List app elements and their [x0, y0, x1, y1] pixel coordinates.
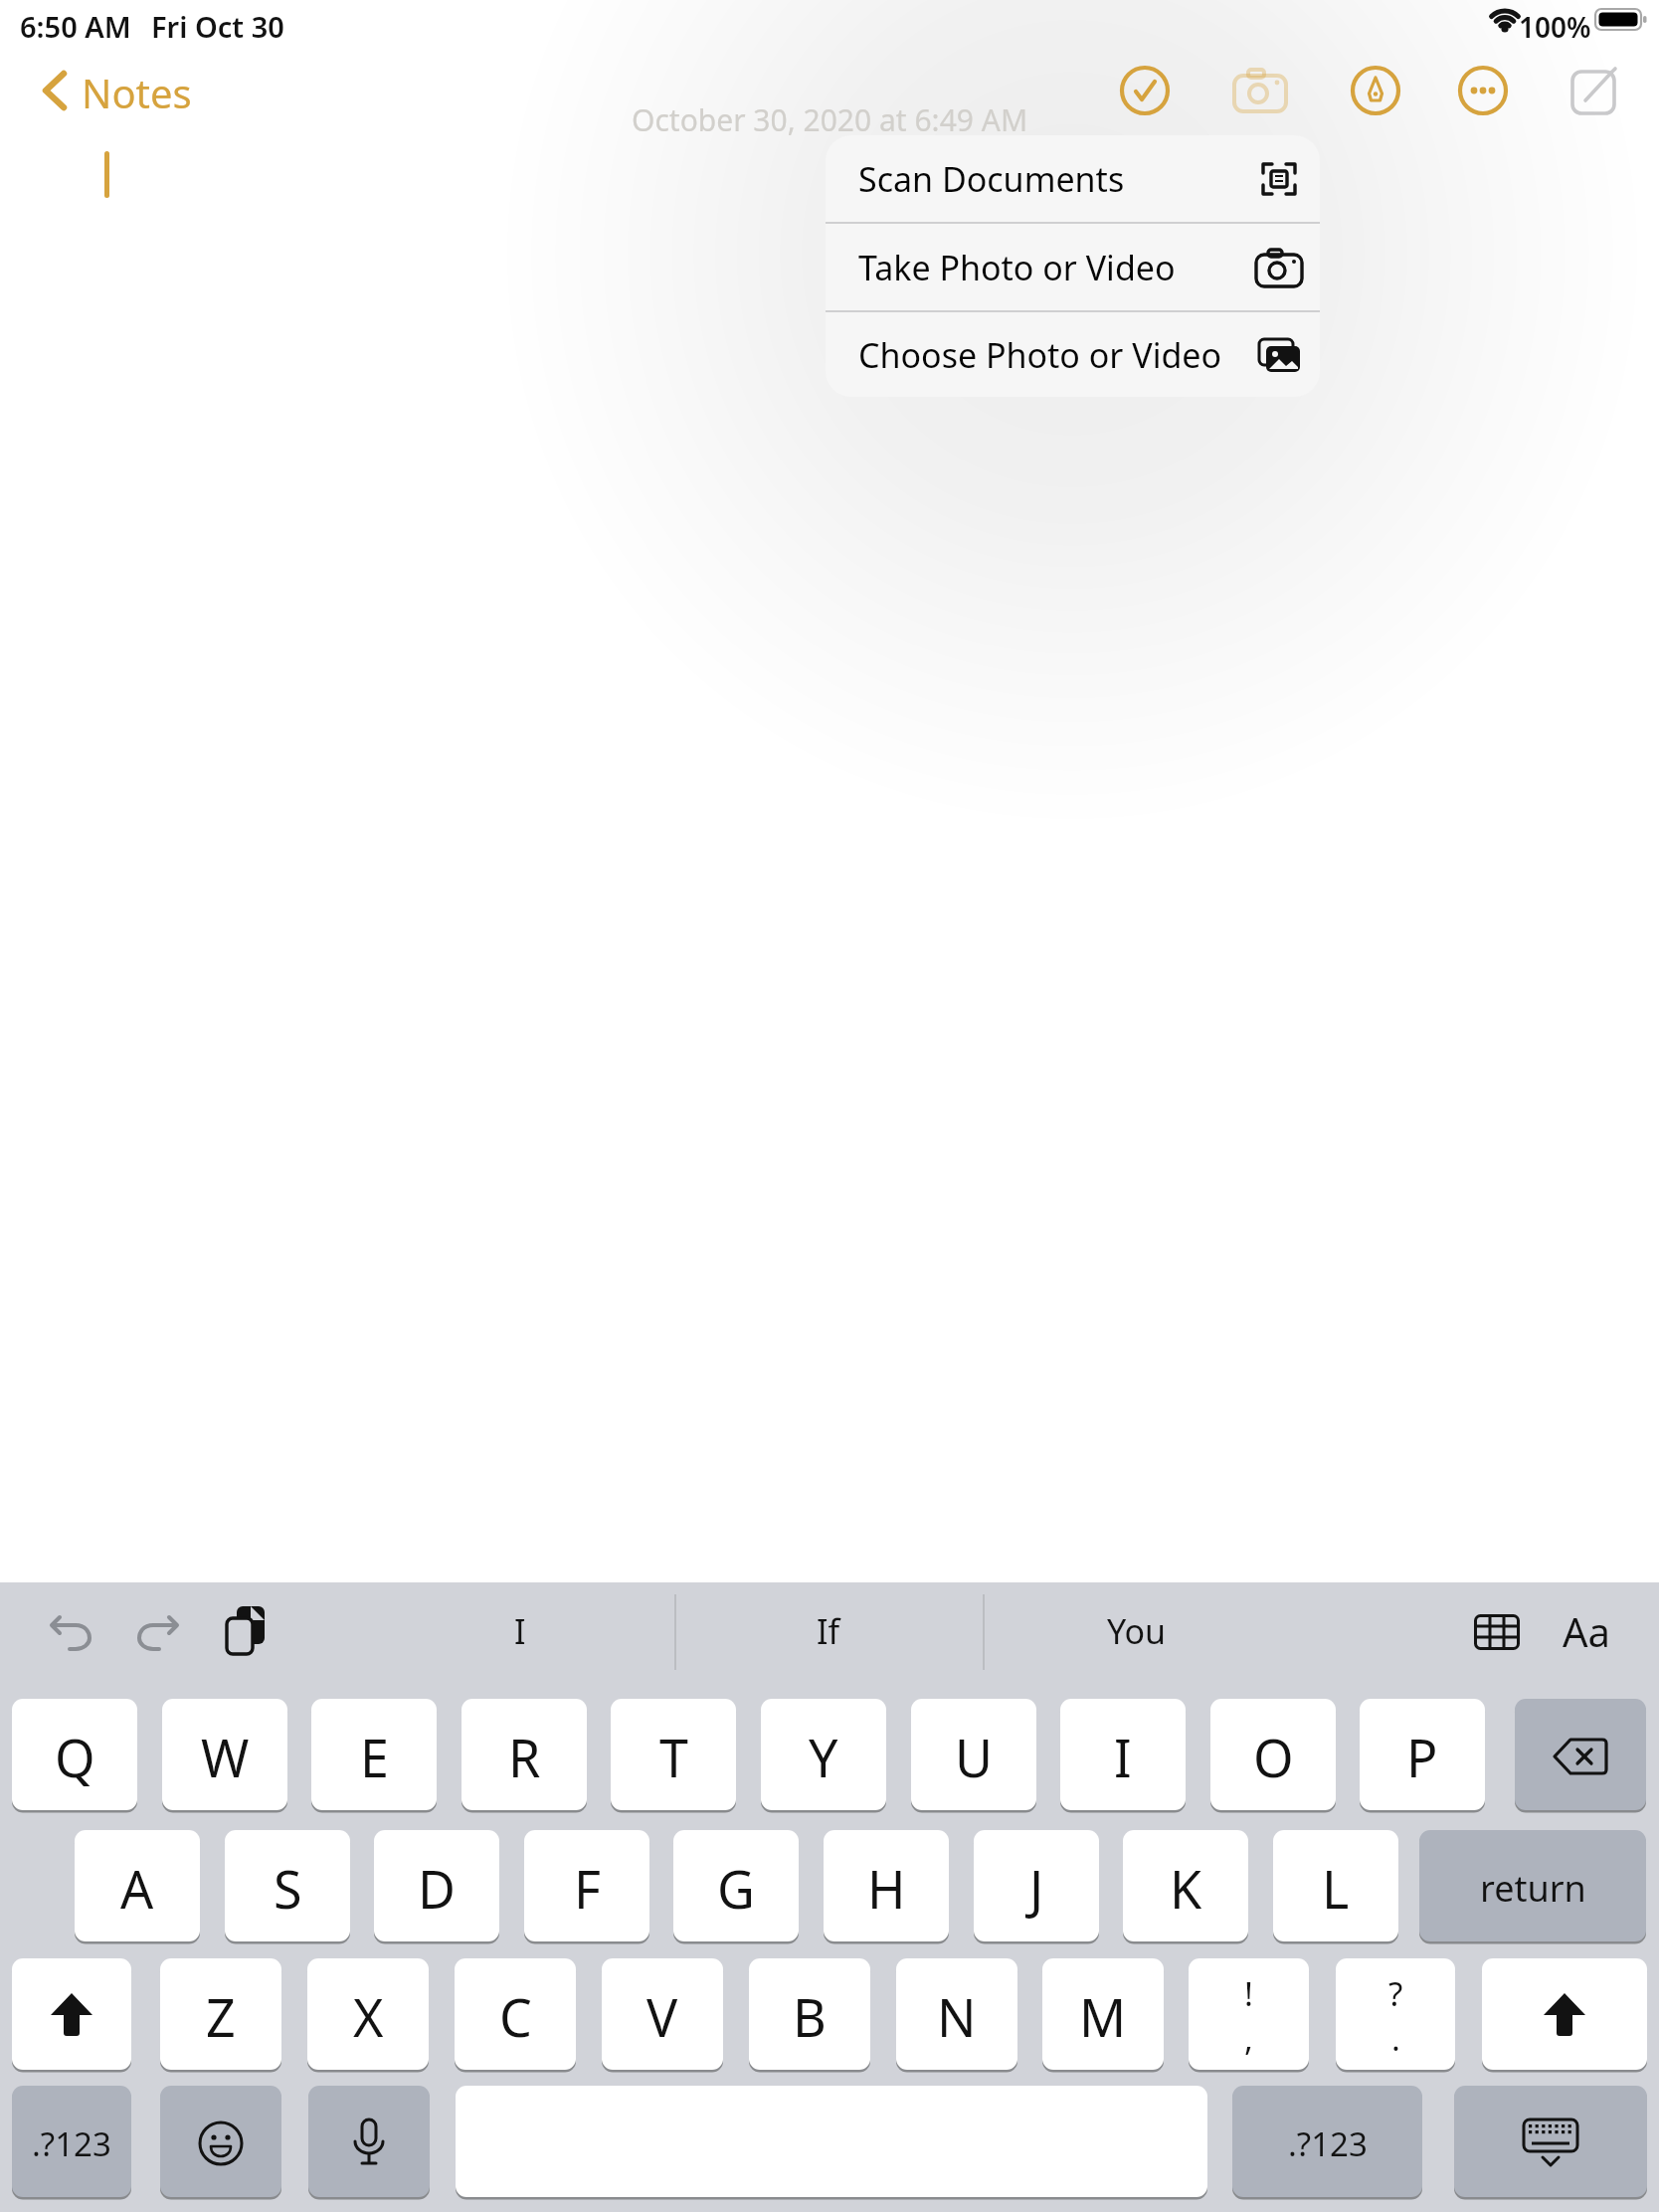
- button[interactable]: [1482, 1958, 1647, 2073]
- button[interactable]: [12, 1958, 131, 2073]
- button[interactable]: D: [374, 1830, 499, 1944]
- button[interactable]: I: [1060, 1699, 1186, 1813]
- staticText: R: [508, 1722, 541, 1792]
- button[interactable]: W: [162, 1699, 287, 1813]
- staticText: I: [514, 1608, 526, 1654]
- staticText: J: [1029, 1853, 1044, 1924]
- button[interactable]: .?123: [1232, 2086, 1422, 2200]
- button[interactable]: X: [307, 1958, 429, 2073]
- button[interactable]: return: [1419, 1830, 1646, 1944]
- button[interactable]: U: [911, 1699, 1036, 1813]
- button[interactable]: Y: [761, 1699, 886, 1813]
- button[interactable]: P: [1360, 1699, 1485, 1813]
- staticText: return: [1480, 1864, 1586, 1913]
- staticText: ,: [1244, 2016, 1253, 2061]
- button[interactable]: [133, 1607, 181, 1655]
- staticText: Fri Oct 30: [151, 7, 284, 46]
- staticText: F: [574, 1853, 601, 1924]
- button[interactable]: B: [749, 1958, 870, 2073]
- staticText: X: [353, 1981, 384, 2052]
- staticText: Choose Photo or Video: [858, 332, 1222, 378]
- button[interactable]: !: [1189, 1958, 1309, 2073]
- staticText: !: [1244, 1971, 1253, 2016]
- staticText: .: [1391, 2016, 1400, 2061]
- button[interactable]: [1455, 63, 1511, 118]
- staticText: A: [120, 1853, 154, 1924]
- button[interactable]: Take Photo or Video: [826, 224, 1320, 310]
- button[interactable]: [456, 2086, 1207, 2200]
- staticText: Y: [809, 1722, 838, 1792]
- button[interactable]: Scan Documents: [826, 135, 1320, 222]
- staticText: Aa: [1563, 1604, 1610, 1658]
- button[interactable]: .?123: [12, 2086, 131, 2200]
- button[interactable]: [1117, 63, 1173, 118]
- button[interactable]: M: [1042, 1958, 1164, 2073]
- button[interactable]: V: [602, 1958, 723, 2073]
- staticText: N: [937, 1981, 977, 2052]
- button[interactable]: [1515, 1699, 1646, 1813]
- button[interactable]: [1567, 63, 1623, 118]
- staticText: ?: [1388, 1971, 1403, 2016]
- button[interactable]: [1232, 63, 1288, 118]
- button[interactable]: L: [1273, 1830, 1398, 1944]
- button[interactable]: Choose Photo or Video: [826, 312, 1320, 397]
- staticText: Scan Documents: [858, 156, 1125, 202]
- button[interactable]: K: [1123, 1830, 1248, 1944]
- button[interactable]: O: [1210, 1699, 1336, 1813]
- button[interactable]: J: [974, 1830, 1099, 1944]
- button[interactable]: A: [75, 1830, 200, 1944]
- staticText: G: [717, 1853, 755, 1924]
- button[interactable]: [160, 2086, 281, 2200]
- button[interactable]: Notes: [40, 66, 219, 115]
- staticText: Q: [55, 1722, 95, 1792]
- staticText: 6:50 AM: [20, 7, 131, 46]
- button[interactable]: If: [817, 1608, 840, 1654]
- staticText: H: [867, 1853, 906, 1924]
- button[interactable]: Aa: [1552, 1604, 1621, 1658]
- staticText: Z: [206, 1981, 236, 2052]
- button[interactable]: [48, 1607, 95, 1655]
- staticText: P: [1406, 1722, 1438, 1792]
- staticText: October 30, 2020 at 6:49 AM: [632, 99, 1028, 140]
- button[interactable]: ?: [1336, 1958, 1455, 2073]
- button[interactable]: I: [514, 1608, 526, 1654]
- staticText: .?123: [1288, 2121, 1368, 2166]
- staticText: I: [1114, 1722, 1132, 1792]
- staticText: S: [274, 1853, 302, 1924]
- staticText: L: [1322, 1853, 1350, 1924]
- button[interactable]: T: [611, 1699, 736, 1813]
- button[interactable]: You: [1107, 1608, 1167, 1654]
- staticText: .?123: [32, 2121, 111, 2166]
- staticText: D: [418, 1853, 456, 1924]
- button[interactable]: [221, 1604, 275, 1658]
- button[interactable]: E: [311, 1699, 437, 1813]
- button[interactable]: S: [225, 1830, 350, 1944]
- button[interactable]: Q: [12, 1699, 137, 1813]
- staticText: U: [955, 1722, 994, 1792]
- staticText: O: [1253, 1722, 1294, 1792]
- staticText: Take Photo or Video: [858, 245, 1176, 290]
- button[interactable]: H: [824, 1830, 949, 1944]
- staticText: V: [646, 1981, 678, 2052]
- button[interactable]: Z: [160, 1958, 281, 2073]
- staticText: E: [360, 1722, 389, 1792]
- button[interactable]: [1454, 2086, 1647, 2200]
- staticText: 100%: [1519, 8, 1591, 46]
- staticText: K: [1170, 1853, 1202, 1924]
- button[interactable]: [1472, 1612, 1522, 1652]
- button[interactable]: [308, 2086, 430, 2200]
- button[interactable]: G: [673, 1830, 799, 1944]
- button[interactable]: R: [461, 1699, 587, 1813]
- staticText: B: [793, 1981, 827, 2052]
- staticText: W: [201, 1722, 250, 1792]
- staticText: M: [1079, 1981, 1127, 2052]
- button[interactable]: C: [455, 1958, 576, 2073]
- button[interactable]: N: [896, 1958, 1017, 2073]
- button[interactable]: [1348, 63, 1403, 118]
- button[interactable]: F: [524, 1830, 649, 1944]
- staticText: If: [817, 1608, 840, 1654]
- staticText: C: [499, 1981, 532, 2052]
- staticText: Notes: [82, 66, 192, 115]
- staticText: T: [659, 1722, 688, 1792]
- staticText: You: [1107, 1608, 1167, 1654]
